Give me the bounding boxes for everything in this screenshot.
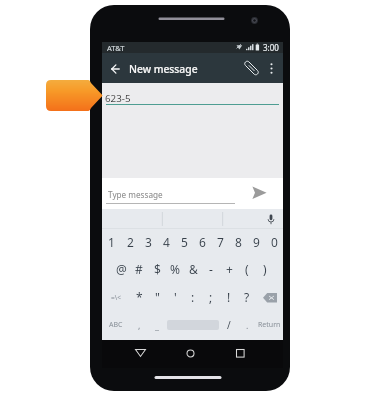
button[interactable]: 5 bbox=[175, 229, 193, 256]
button[interactable]: - bbox=[202, 256, 220, 284]
staticText: . bbox=[246, 319, 249, 331]
staticText: % bbox=[170, 261, 180, 277]
button[interactable]: ABC bbox=[102, 312, 130, 340]
button[interactable]: Back bbox=[129, 342, 151, 364]
staticText: ( bbox=[245, 261, 249, 277]
staticText: 2 bbox=[127, 234, 134, 250]
button[interactable]: , bbox=[130, 312, 148, 340]
button[interactable]: 0 bbox=[265, 229, 283, 256]
staticText: - bbox=[209, 261, 213, 277]
staticText: ) bbox=[263, 261, 267, 277]
button[interactable]: ! bbox=[220, 284, 238, 312]
button[interactable]: " bbox=[148, 284, 166, 312]
button[interactable]: 3 bbox=[139, 229, 157, 256]
staticText: 3:00 bbox=[263, 42, 279, 53]
staticText: # bbox=[135, 261, 143, 277]
button[interactable]: ? bbox=[238, 284, 256, 312]
button[interactable]: : bbox=[184, 284, 202, 312]
staticText: _ bbox=[155, 319, 159, 331]
staticText: New message bbox=[129, 62, 198, 76]
button[interactable]: Backspace bbox=[256, 284, 283, 312]
button[interactable]: =\< bbox=[102, 284, 130, 312]
button[interactable]: 7 bbox=[211, 229, 229, 256]
button[interactable]: ) bbox=[256, 256, 274, 284]
button[interactable]: 6 bbox=[193, 229, 211, 256]
staticText: 6 bbox=[199, 234, 206, 250]
staticText: @ bbox=[116, 261, 127, 277]
staticText: 5 bbox=[181, 234, 188, 250]
staticText: ? bbox=[244, 289, 250, 305]
staticText: 9 bbox=[253, 234, 260, 250]
button[interactable]: More options bbox=[262, 59, 280, 77]
button[interactable]: 2 bbox=[121, 229, 139, 256]
button[interactable]: Voice input bbox=[264, 212, 278, 226]
button[interactable]: ; bbox=[202, 284, 220, 312]
button[interactable]: % bbox=[166, 256, 184, 284]
button[interactable]: 9 bbox=[247, 229, 265, 256]
button[interactable]: _ bbox=[148, 312, 166, 340]
button[interactable]: # bbox=[130, 256, 148, 284]
button[interactable]: Home bbox=[179, 342, 201, 364]
staticText: 623-5 bbox=[105, 92, 131, 105]
button[interactable]: / bbox=[220, 312, 238, 340]
staticText: / bbox=[227, 318, 231, 332]
staticText: AT&T bbox=[107, 43, 125, 53]
button[interactable]: . bbox=[238, 312, 256, 340]
staticText: 7 bbox=[217, 234, 224, 250]
button[interactable]: Back bbox=[105, 59, 125, 79]
button[interactable]: Attach file bbox=[240, 57, 262, 79]
staticText: , bbox=[138, 319, 141, 331]
staticText: =\< bbox=[111, 293, 121, 302]
button[interactable]: + bbox=[220, 256, 238, 284]
staticText: 3 bbox=[145, 234, 152, 250]
staticText: Return bbox=[258, 320, 281, 330]
staticText: ; bbox=[209, 289, 213, 305]
staticText: + bbox=[226, 261, 233, 277]
staticText: ABC bbox=[109, 320, 123, 330]
staticText: $ bbox=[154, 261, 161, 277]
button[interactable]: ' bbox=[166, 284, 184, 312]
button[interactable]: Send bbox=[248, 182, 270, 204]
button[interactable]: 4 bbox=[157, 229, 175, 256]
staticText: 4 bbox=[163, 234, 170, 250]
button[interactable]: @ bbox=[112, 256, 130, 284]
staticText: 0 bbox=[271, 234, 278, 250]
button[interactable]: Recent apps bbox=[229, 342, 251, 364]
staticText: ' bbox=[174, 289, 177, 305]
button[interactable]: Return bbox=[256, 312, 283, 340]
staticText: ! bbox=[227, 289, 231, 305]
button[interactable]: 1 bbox=[102, 229, 121, 256]
button[interactable]: Space bbox=[166, 312, 220, 340]
staticText: 8 bbox=[235, 234, 242, 250]
staticText: : bbox=[191, 289, 195, 305]
staticText: 1 bbox=[108, 234, 115, 250]
button[interactable]: * bbox=[130, 284, 148, 312]
button[interactable]: & bbox=[184, 256, 202, 284]
staticText: Type message bbox=[108, 189, 163, 200]
staticText: * bbox=[136, 289, 143, 305]
button[interactable]: $ bbox=[148, 256, 166, 284]
staticText: " bbox=[155, 289, 160, 305]
button[interactable]: 8 bbox=[229, 229, 247, 256]
staticText: & bbox=[189, 261, 198, 277]
button[interactable]: ( bbox=[238, 256, 256, 284]
